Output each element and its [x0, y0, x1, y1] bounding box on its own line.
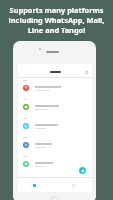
button[interactable]: Profile — [85, 71, 88, 74]
button[interactable] — [18, 154, 92, 173]
button[interactable] — [18, 78, 92, 97]
button[interactable] — [18, 116, 92, 135]
button[interactable]: Add — [79, 167, 86, 174]
button[interactable] — [18, 97, 92, 116]
button[interactable]: Files — [32, 183, 36, 187]
button[interactable]: Settings — [71, 183, 75, 187]
button[interactable] — [18, 135, 92, 154]
staticText: Supports many platforms including WhatsA… — [0, 5, 113, 35]
